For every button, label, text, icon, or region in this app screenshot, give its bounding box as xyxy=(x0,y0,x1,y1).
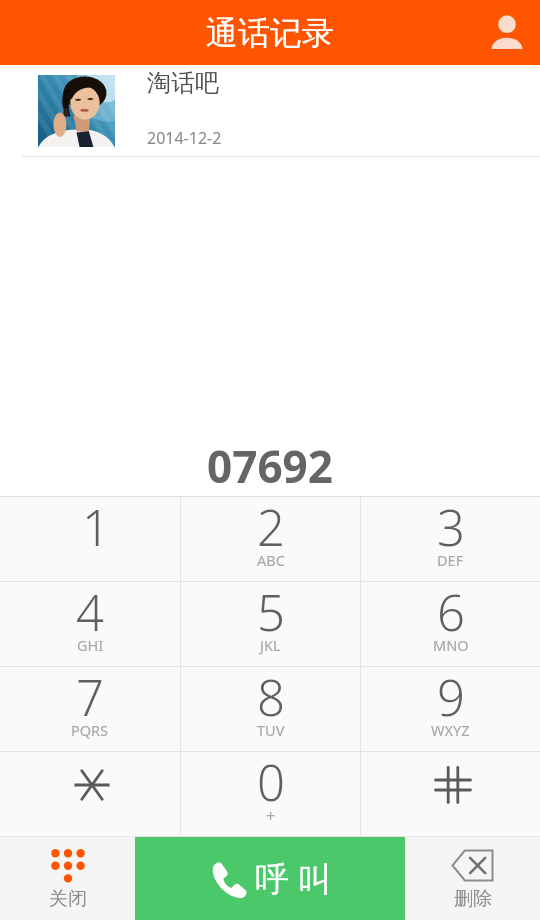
staticText: 2 xyxy=(257,494,285,561)
button[interactable]: 1 xyxy=(0,497,180,581)
staticText: DEF xyxy=(437,550,464,570)
staticText: 淘话吧 xyxy=(147,68,219,98)
staticText: 8 xyxy=(257,664,285,731)
staticText: WXYZ xyxy=(431,720,470,740)
staticText: 7 xyxy=(76,664,104,731)
staticText: 9 xyxy=(437,664,465,731)
staticText: 2014-12-2 xyxy=(147,127,222,149)
button[interactable] xyxy=(0,752,180,836)
button[interactable]: Contacts xyxy=(472,0,540,65)
staticText: + xyxy=(266,805,276,827)
button[interactable]: 7 xyxy=(0,667,180,751)
staticText: 关闭 xyxy=(49,887,87,911)
button[interactable] xyxy=(361,752,540,836)
button[interactable]: 呼 叫 xyxy=(135,837,405,920)
button[interactable]: 6 xyxy=(361,582,540,666)
button[interactable]: 2 xyxy=(181,497,360,581)
button[interactable]: Delete xyxy=(405,837,540,920)
button[interactable]: 5 xyxy=(181,582,360,666)
staticText: 0 xyxy=(257,749,285,816)
button[interactable]: Hide keypad xyxy=(0,837,135,920)
staticText: TUV xyxy=(257,720,285,740)
staticText: 5 xyxy=(257,579,285,646)
staticText: JKL xyxy=(260,635,281,655)
staticText: 07692 xyxy=(0,436,540,496)
button[interactable]: 8 xyxy=(181,667,360,751)
staticText: 4 xyxy=(76,579,104,646)
staticText: ABC xyxy=(257,550,285,570)
button[interactable]: 9 xyxy=(361,667,540,751)
staticText: GHI xyxy=(77,635,104,655)
staticText: 6 xyxy=(437,579,465,646)
staticText: MNO xyxy=(433,635,469,655)
staticText: 3 xyxy=(437,494,465,561)
staticText: 1 xyxy=(82,494,110,561)
staticText: PQRS xyxy=(71,720,109,740)
button[interactable]: 淘话吧 xyxy=(0,65,540,156)
staticText: 删除 xyxy=(454,887,492,911)
button[interactable]: 3 xyxy=(361,497,540,581)
staticText: 通话记录 xyxy=(206,13,334,53)
button[interactable]: 4 xyxy=(0,582,180,666)
button[interactable]: 0 xyxy=(181,752,360,836)
staticText: 呼 叫 xyxy=(255,855,332,901)
